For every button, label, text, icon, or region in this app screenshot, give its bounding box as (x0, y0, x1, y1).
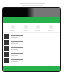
button[interactable] (3, 52, 60, 57)
other: Quick action (11, 25, 15, 29)
button[interactable]: Quick action (35, 25, 40, 31)
other: Quick action (24, 25, 28, 29)
button[interactable] (3, 46, 60, 51)
button[interactable] (3, 40, 60, 45)
button[interactable]: Quick action (23, 25, 28, 31)
button[interactable] (3, 58, 60, 63)
button[interactable] (3, 34, 60, 39)
other: Quick action (36, 25, 40, 29)
other: Quick action (49, 25, 53, 29)
button[interactable]: Quick action (48, 25, 53, 31)
button[interactable]: Quick action (10, 25, 15, 31)
